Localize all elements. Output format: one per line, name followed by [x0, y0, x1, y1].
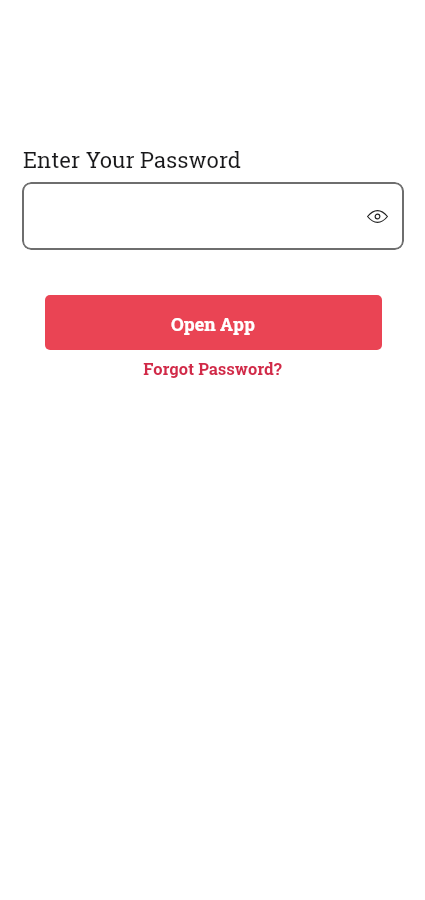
button[interactable]: Show password: [360, 199, 394, 233]
button[interactable]: Open App: [45, 295, 382, 350]
button[interactable]: Forgot Password?: [135, 355, 290, 383]
staticText: Open App: [171, 312, 255, 336]
staticText: Enter Your Password: [23, 145, 242, 174]
button[interactable]: Show password: [22, 182, 404, 250]
